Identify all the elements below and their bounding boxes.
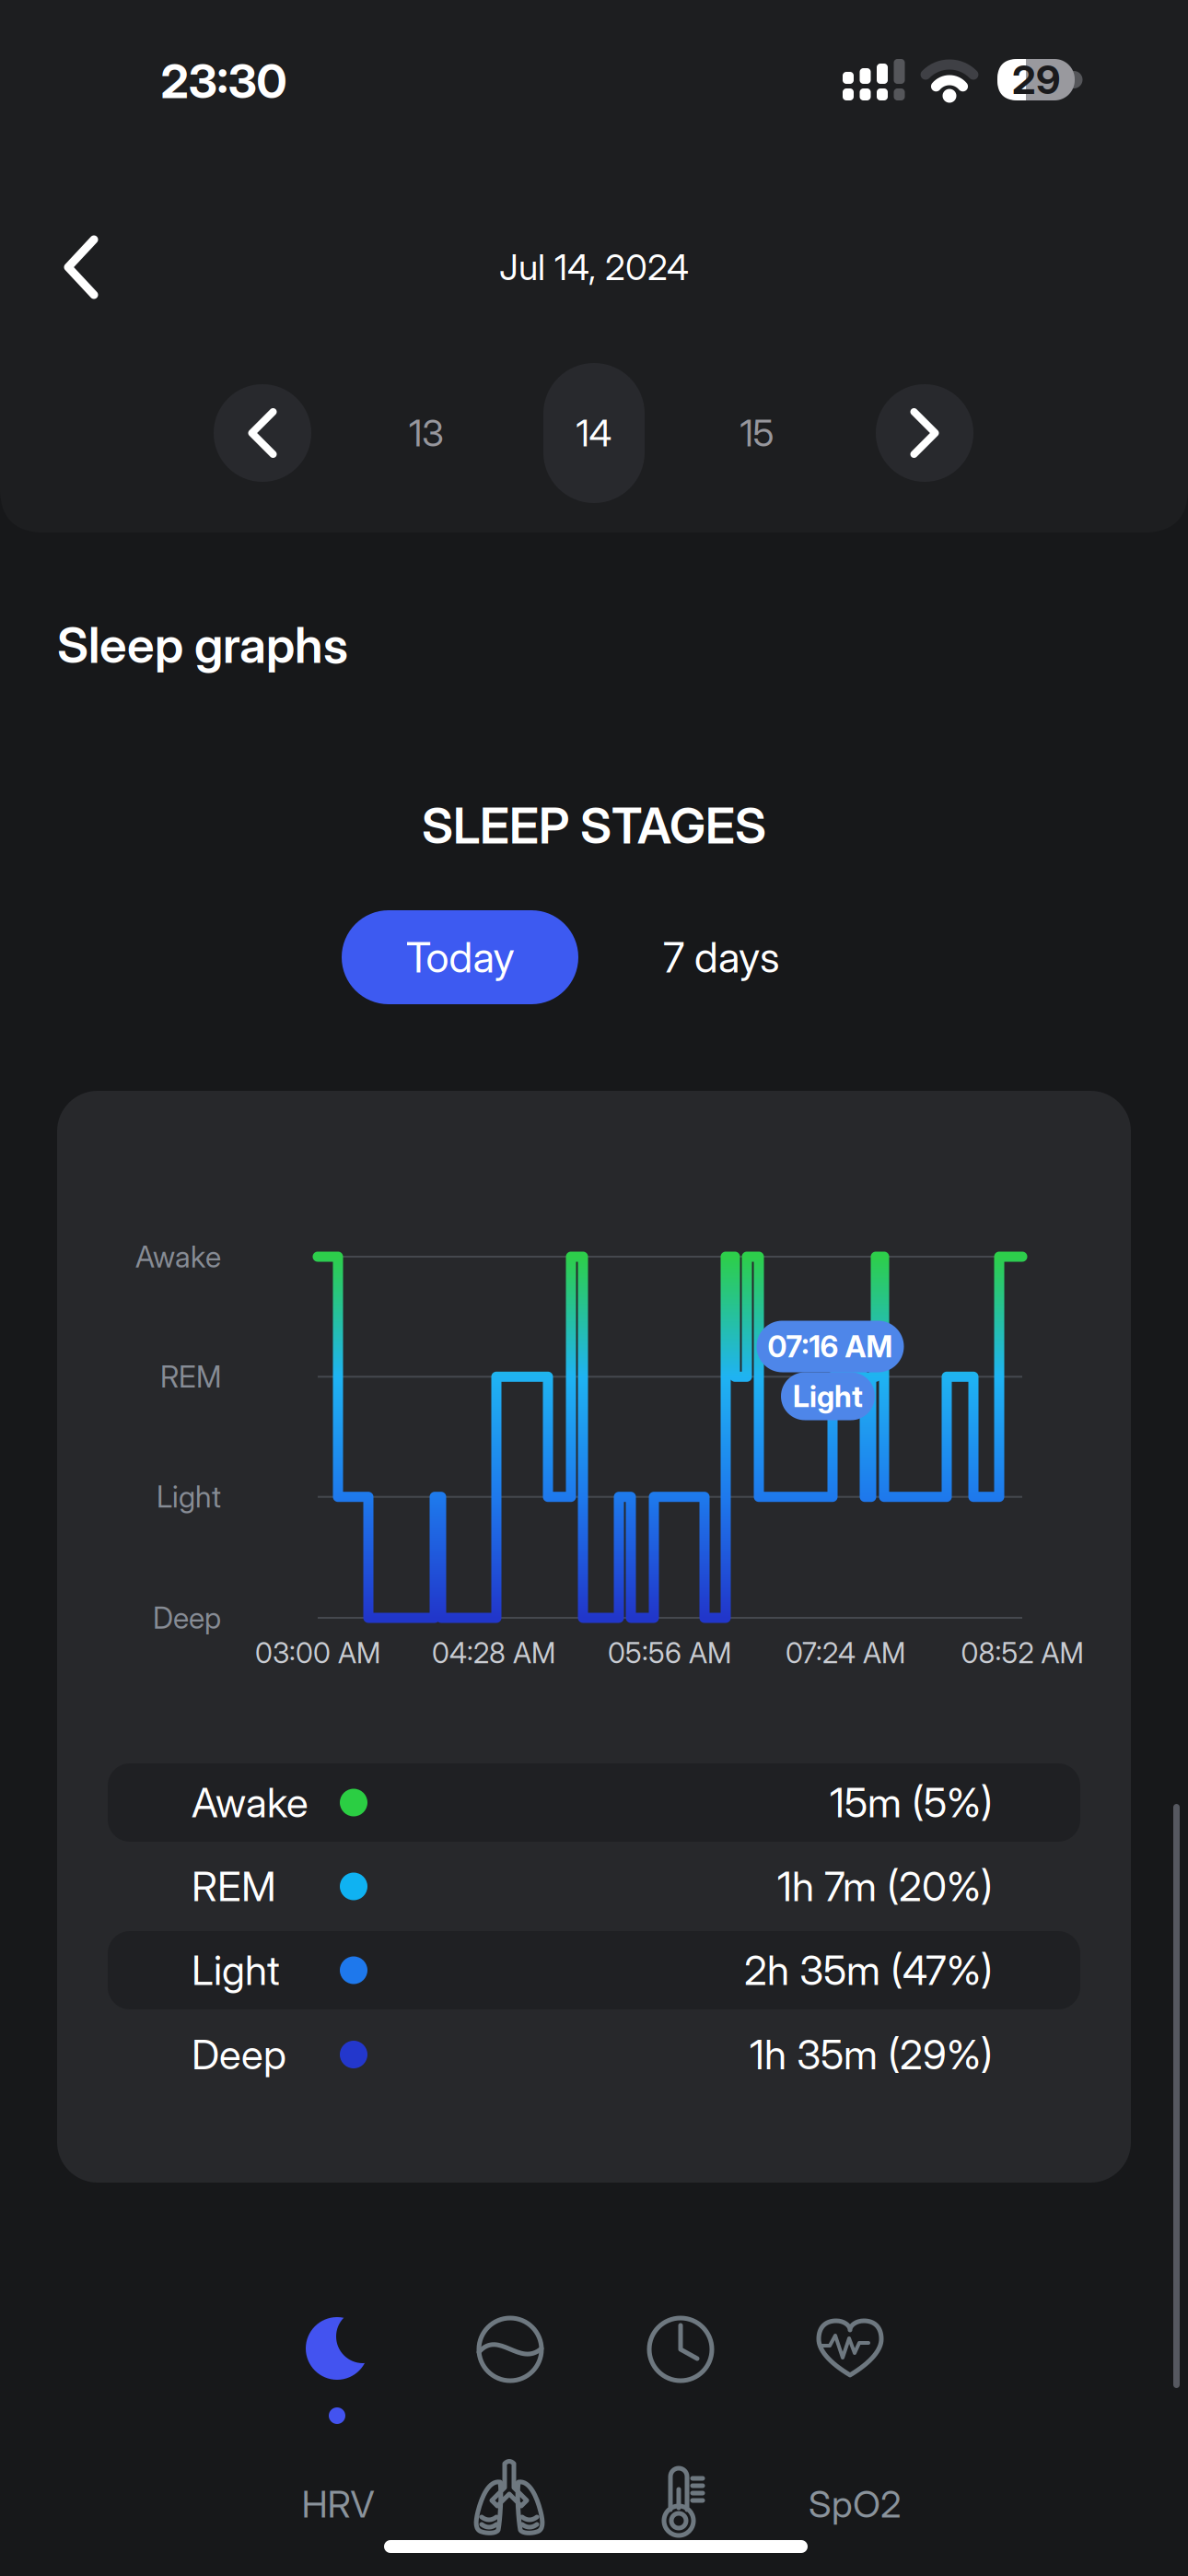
button[interactable] <box>469 2308 552 2391</box>
staticText: Today <box>406 933 514 982</box>
button[interactable] <box>463 2453 555 2545</box>
staticText: SLEEP STAGES <box>422 796 766 854</box>
staticText: 05:56 AM <box>608 1636 731 1670</box>
button[interactable]: 14 <box>543 363 645 503</box>
staticText: Deep <box>192 2031 286 2078</box>
staticText: 14 <box>576 411 612 455</box>
button[interactable]: 7 days <box>643 910 800 1004</box>
staticText: 07:16 AM <box>768 1329 893 1364</box>
button[interactable]: HRV <box>278 2463 398 2546</box>
button[interactable]: SpO2 <box>790 2463 919 2546</box>
staticText: SpO2 <box>809 2482 901 2526</box>
staticText: Deep <box>153 1600 221 1635</box>
staticText: REM <box>192 1862 276 1910</box>
button[interactable] <box>809 2308 891 2391</box>
staticText: HRV <box>302 2482 374 2526</box>
staticText: Jul 14, 2024 <box>499 246 689 288</box>
staticText: 1h 35m (29%) <box>750 2031 993 2078</box>
button[interactable] <box>49 226 113 309</box>
staticText: Sleep graphs <box>57 616 348 674</box>
button[interactable] <box>291 2275 383 2422</box>
staticText: Light <box>157 1479 221 1514</box>
staticText: 15m (5%) <box>830 1779 993 1826</box>
staticText: 2h 35m (47%) <box>744 1946 993 1994</box>
staticText: 07:24 AM <box>786 1636 905 1670</box>
staticText: 13 <box>409 411 444 455</box>
staticText: Light <box>793 1379 863 1414</box>
button[interactable] <box>876 384 973 482</box>
staticText: 04:28 AM <box>432 1636 555 1670</box>
staticText: 08:52 AM <box>961 1636 1083 1670</box>
button[interactable] <box>633 2453 725 2545</box>
button[interactable] <box>639 2308 722 2391</box>
button[interactable] <box>214 384 311 482</box>
staticText: Light <box>192 1946 280 1994</box>
staticText: Awake <box>135 1239 221 1274</box>
staticText: 03:00 AM <box>255 1636 380 1670</box>
staticText: 1h 7m (20%) <box>777 1862 993 1910</box>
staticText: 23:30 <box>161 54 287 109</box>
staticText: 29 <box>1012 56 1060 103</box>
staticText: Awake <box>192 1779 309 1826</box>
staticText: 7 days <box>663 933 780 982</box>
button[interactable]: Today <box>342 910 578 1004</box>
staticText: 15 <box>740 411 774 455</box>
staticText: REM <box>160 1359 221 1394</box>
button[interactable]: 13 <box>385 378 468 488</box>
button[interactable]: 15 <box>716 378 798 488</box>
